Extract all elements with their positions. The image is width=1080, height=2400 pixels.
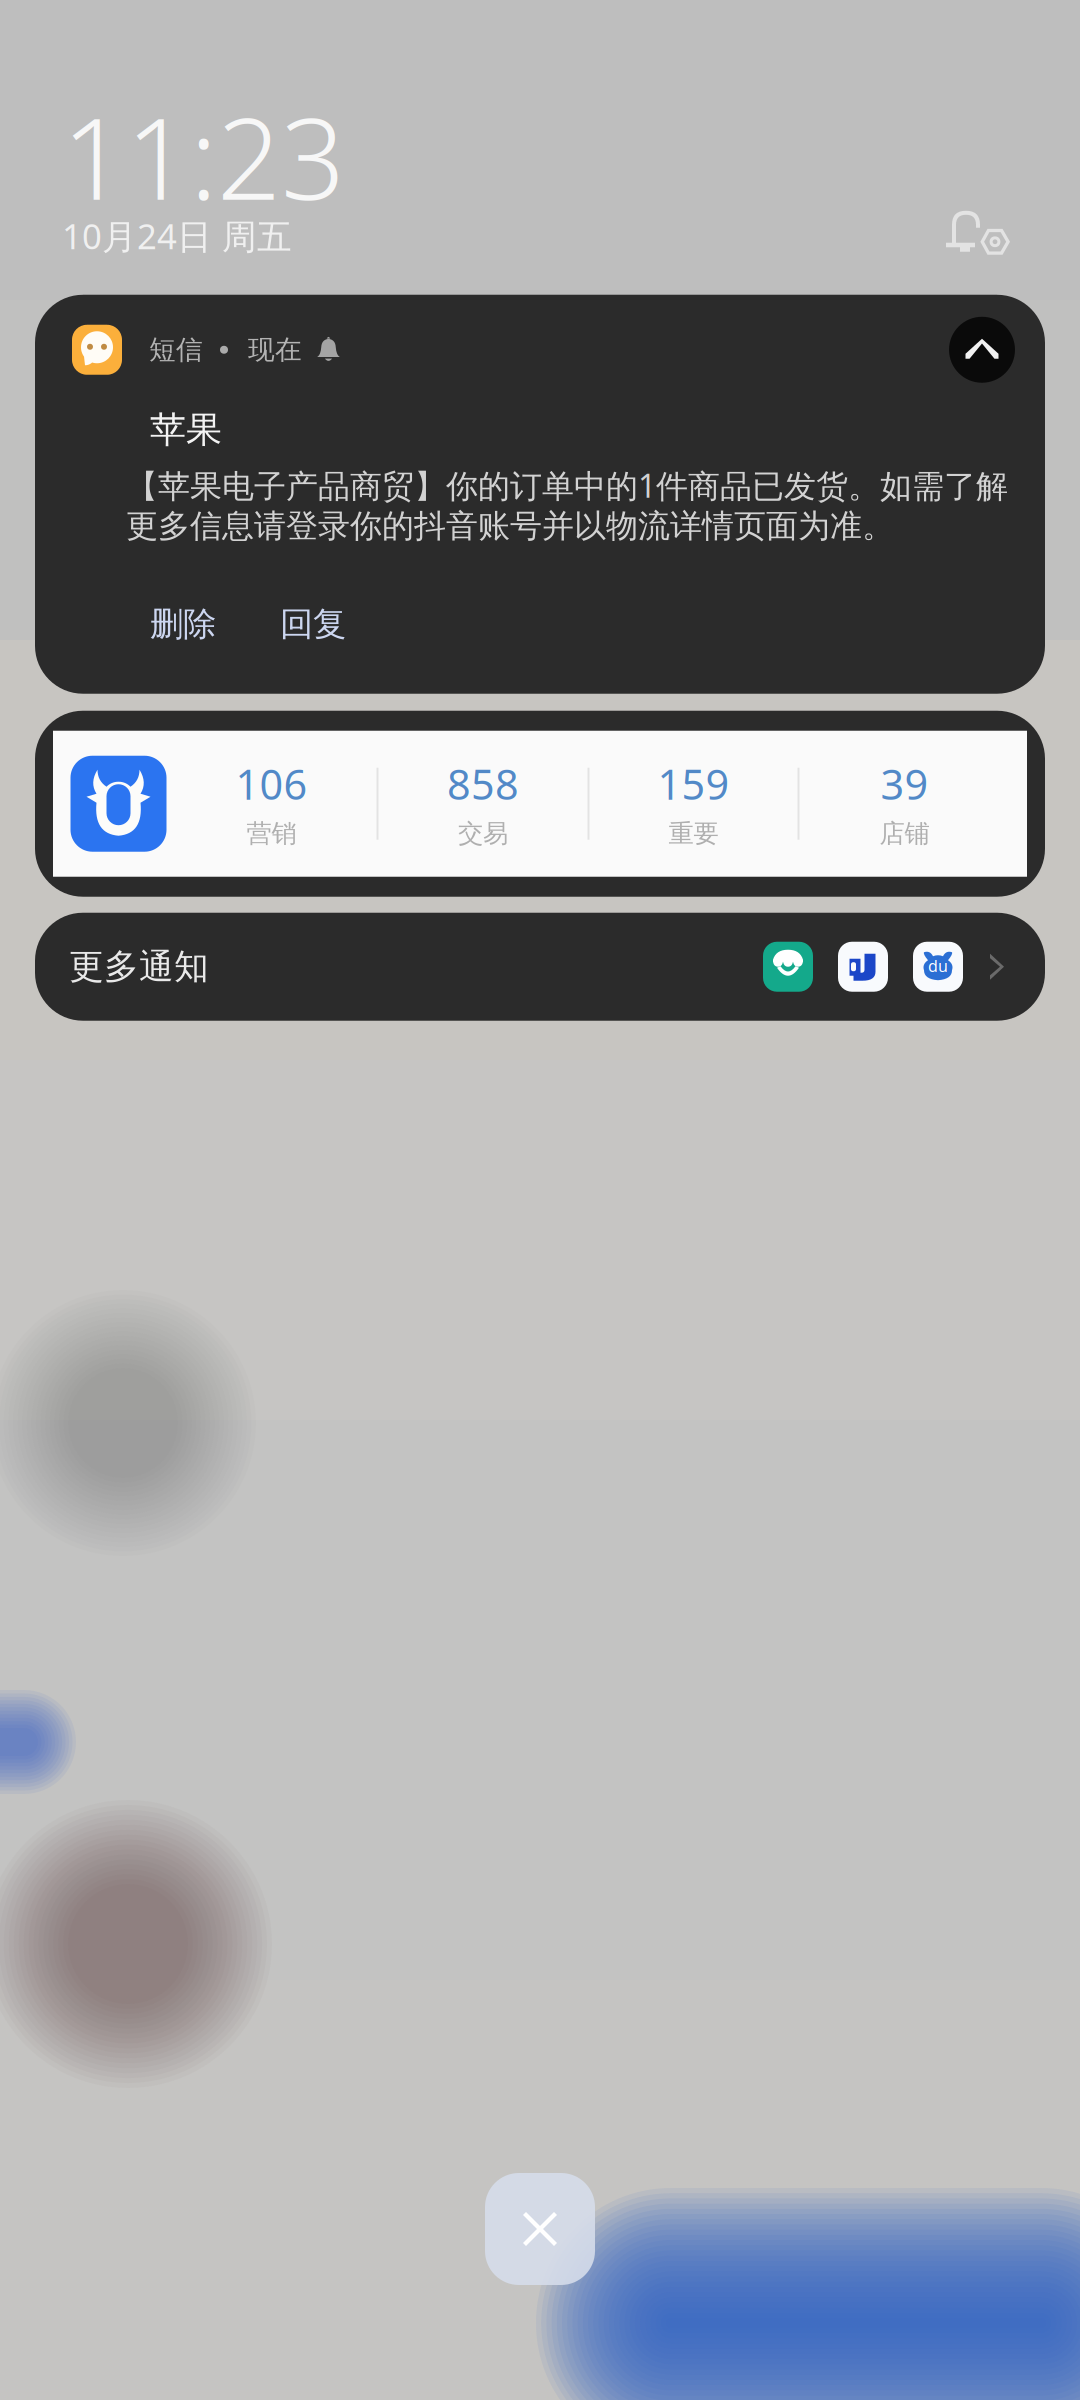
staticText: 现在 (248, 333, 302, 366)
staticText: 重要 (668, 818, 718, 849)
staticText: 短信 (149, 333, 203, 366)
staticText: 【苹果电子产品商贸】你的订单中的1件商品已发货。如需了解更多信息请登录你的抖音账… (126, 464, 1008, 546)
staticText: 删除 (150, 604, 216, 645)
button[interactable]: Dismiss all notifications (485, 2173, 595, 2285)
button[interactable]: 更多通知 (35, 913, 1045, 1021)
staticText: 更多通知 (69, 945, 209, 988)
staticText: 10月24日 周五 (62, 213, 292, 259)
staticText: 苹果 (150, 408, 222, 452)
staticText: 106 (235, 756, 307, 811)
staticText: 店铺 (879, 818, 929, 849)
staticText: 营销 (246, 818, 296, 849)
staticText: 159 (657, 756, 729, 811)
staticText: du (928, 955, 948, 976)
button[interactable]: 回复 (280, 604, 346, 645)
staticText: 39 (880, 756, 928, 811)
staticText: 回复 (280, 604, 346, 645)
button[interactable]: Collapse notification (949, 317, 1015, 383)
button[interactable]: 删除 (150, 604, 216, 645)
staticText: 858 (447, 756, 519, 811)
staticText: 交易 (458, 818, 508, 849)
staticText: 11:23 (62, 82, 345, 231)
button[interactable]: 106 (35, 711, 1045, 897)
